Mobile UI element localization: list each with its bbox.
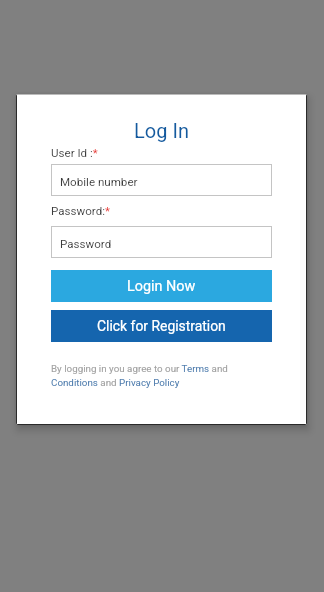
button[interactable]: Login Now: [51, 270, 272, 302]
staticText: Click for Registration: [97, 318, 226, 334]
staticText: Password: [60, 237, 112, 251]
staticText: By logging in you agree to our Terms and…: [51, 363, 272, 388]
staticText: Log In: [16, 119, 307, 142]
staticText: Login Now: [127, 278, 196, 295]
button[interactable]: Mobile number: [51, 164, 272, 196]
button[interactable]: Password: [51, 226, 272, 258]
staticText: Password:*: [51, 204, 111, 218]
button[interactable]: Click for Registration: [51, 310, 272, 342]
staticText: User Id :*: [51, 146, 98, 160]
staticText: Mobile number: [60, 175, 138, 189]
